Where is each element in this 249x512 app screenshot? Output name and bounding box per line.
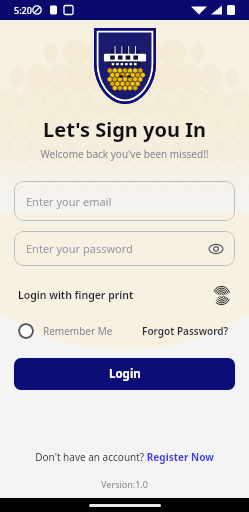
staticText: Enter your email <box>26 194 112 209</box>
button[interactable]: Forgot Password? <box>140 322 231 340</box>
button[interactable]: Remember Me <box>18 323 113 339</box>
staticText: Let's Sign you In <box>0 116 249 143</box>
staticText: 5:20 <box>14 4 32 16</box>
staticText: Welcome back you've been missed!! <box>0 147 249 161</box>
button[interactable]: Login <box>14 358 235 390</box>
staticText: Version:1.0 <box>0 478 249 490</box>
button[interactable]: Don't have an account? Register Now <box>0 450 249 464</box>
staticText: Remember Me <box>43 324 113 338</box>
staticText: Login with finger print <box>18 288 134 302</box>
button[interactable]: Login with finger print <box>18 282 231 308</box>
staticText: Login <box>109 366 141 382</box>
staticText: Don't have an account? Register Now <box>35 450 214 464</box>
button[interactable]: Enter your email <box>14 181 235 221</box>
staticText: Forgot Password? <box>142 324 229 338</box>
button[interactable]: Enter your password <box>14 231 235 266</box>
staticText: Enter your password <box>26 241 133 256</box>
button[interactable]: Show password <box>207 240 225 258</box>
other: Fingerprint login <box>211 285 231 305</box>
